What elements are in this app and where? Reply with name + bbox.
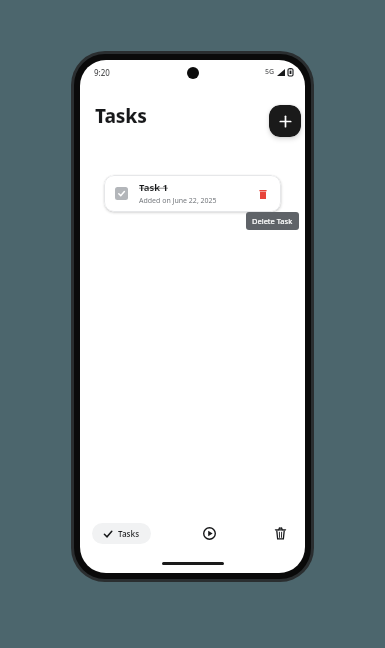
staticText: Task 1 xyxy=(139,181,168,194)
staticText: Tasks xyxy=(118,528,140,539)
staticText: Tasks xyxy=(95,103,147,129)
staticText: 5G xyxy=(265,67,275,77)
staticText: Added on June 22, 2025 xyxy=(139,196,217,206)
button[interactable]: Timer xyxy=(196,520,222,546)
button[interactable]: Tasks xyxy=(92,523,151,544)
button[interactable]: Delete all xyxy=(267,520,293,546)
button[interactable]: Delete Task xyxy=(256,187,270,201)
button[interactable]: Task completed checkbox xyxy=(115,187,128,200)
button[interactable]: Task completed checkbox xyxy=(104,175,281,212)
staticText: Delete Task xyxy=(252,216,293,226)
staticText: 9:20 xyxy=(94,67,110,78)
button[interactable]: Add task xyxy=(269,105,301,137)
